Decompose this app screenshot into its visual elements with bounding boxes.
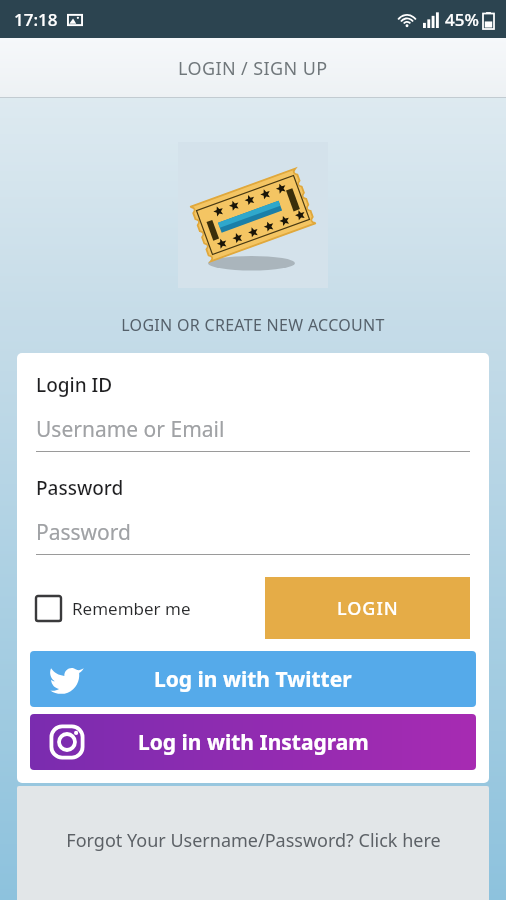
staticText: LOGIN / SIGN UP — [178, 56, 328, 81]
staticText: 17:18 — [14, 8, 58, 31]
button[interactable]: Log in with Instagram — [30, 714, 476, 770]
staticText: LOGIN OR CREATE NEW ACCOUNT — [0, 314, 506, 336]
staticText: Password — [36, 475, 124, 501]
staticText: Login ID — [36, 372, 113, 398]
button[interactable]: LOGIN — [265, 577, 470, 639]
staticText: LOGIN — [337, 596, 399, 621]
button[interactable]: Remember me — [36, 590, 191, 627]
staticText: Log in with Twitter — [154, 665, 352, 694]
staticText: Password — [36, 518, 131, 547]
button[interactable]: Log in with Twitter — [30, 651, 476, 707]
staticText: Forgot Your Username/Password? Click her… — [66, 828, 441, 853]
staticText: 45% — [445, 8, 479, 31]
staticText: Log in with Instagram — [138, 728, 369, 757]
button[interactable]: Forgot Your Username/Password? Click her… — [17, 786, 489, 900]
staticText: Remember me — [72, 597, 191, 620]
staticText: Username or Email — [36, 415, 225, 444]
